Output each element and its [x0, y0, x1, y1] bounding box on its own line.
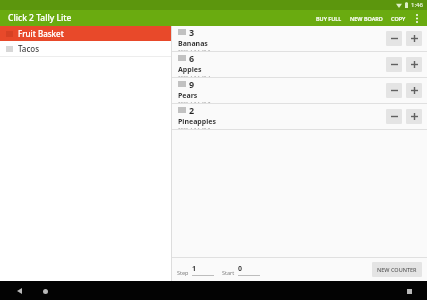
button[interactable]: BUY FULL [312, 12, 346, 25]
staticText: 9 [189, 78, 195, 90]
button[interactable]: 2 [172, 104, 427, 129]
button[interactable]: More options [410, 11, 424, 25]
button[interactable]: Increment [406, 109, 422, 124]
button[interactable]: NEW BOARD [346, 12, 387, 25]
button[interactable]: COPY [387, 12, 410, 25]
button[interactable]: NEW COUNTER [372, 262, 422, 277]
button[interactable]: Fruit Basket [0, 26, 171, 41]
staticText: NEW BOARD [350, 15, 383, 22]
button[interactable]: Back [12, 284, 26, 298]
button[interactable]: Increment [406, 83, 422, 98]
button[interactable]: Decrement [386, 109, 402, 124]
button[interactable]: Increment [406, 31, 422, 46]
button[interactable]: 0 [238, 264, 260, 276]
staticText: Click 2 Tally Lite [8, 12, 72, 24]
button[interactable]: Recent apps [402, 284, 416, 298]
staticText: Step [177, 269, 189, 276]
button[interactable]: Home [38, 284, 52, 298]
staticText: 2 [189, 104, 195, 116]
button[interactable]: 9 [172, 78, 427, 103]
staticText: COPY [391, 15, 406, 22]
staticText: Fruit Basket [18, 28, 64, 39]
staticText: NEW COUNTER [377, 266, 417, 273]
button[interactable]: Increment [406, 57, 422, 72]
staticText: 0 [238, 264, 243, 274]
staticText: 6 [189, 52, 195, 64]
button[interactable]: Decrement [386, 57, 402, 72]
staticText: 2021-4-3 1:40:8 [178, 127, 211, 129]
staticText: 2021-4-3 1:40:7 [178, 101, 211, 103]
button[interactable]: Decrement [386, 31, 402, 46]
button[interactable]: Decrement [386, 83, 402, 98]
staticText: Pears [178, 91, 198, 101]
staticText: Pineapples [178, 117, 216, 127]
button[interactable]: 6 [172, 52, 427, 77]
staticText: Bananas [178, 39, 208, 49]
staticText: 1:46 [411, 1, 423, 9]
staticText: Start [222, 269, 235, 276]
button[interactable]: 1 [192, 264, 214, 276]
staticText: 2021-4-3 1:40:2 [178, 49, 211, 51]
staticText: Apples [178, 65, 202, 75]
staticText: BUY FULL [316, 15, 342, 22]
staticText: 2021-4-3 1:40:4 [178, 75, 211, 77]
staticText: 1 [192, 264, 197, 274]
staticText: 3 [189, 26, 195, 38]
button[interactable]: Tacos [0, 41, 171, 56]
button[interactable]: 3 [172, 26, 427, 51]
staticText: Tacos [18, 43, 40, 54]
